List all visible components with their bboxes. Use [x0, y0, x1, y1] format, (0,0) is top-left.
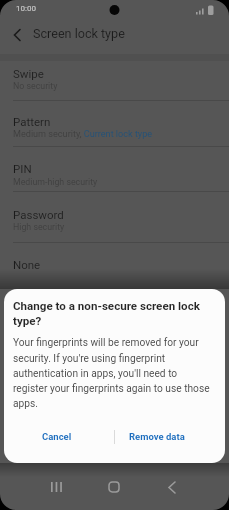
staticText: Medium-high security [13, 177, 98, 187]
button[interactable] [38, 472, 76, 502]
button[interactable]: Pattern [0, 100, 229, 146]
button[interactable] [152, 472, 190, 502]
button[interactable]: Swipe [0, 56, 229, 100]
button[interactable] [0, 22, 229, 48]
staticText: Change to a non-secure screen lock type? [13, 299, 200, 328]
staticText: Pattern [13, 115, 51, 128]
button[interactable]: None [0, 242, 229, 289]
button[interactable]: Password [0, 191, 229, 242]
staticText: Password [13, 208, 64, 221]
button[interactable]: Cancel [24, 421, 90, 451]
staticText: No security [13, 81, 58, 91]
staticText: High security [13, 222, 65, 232]
staticText: Remove data [129, 431, 185, 442]
staticText: 10:00 [16, 4, 36, 13]
button[interactable]: PIN [0, 146, 229, 191]
staticText: Screen lock type [33, 26, 125, 41]
staticText: Swipe [13, 67, 44, 80]
staticText: Your fingerprints will be removed for yo… [13, 337, 210, 409]
staticText: PIN [13, 162, 32, 175]
button[interactable]: Remove data [122, 421, 192, 451]
button[interactable] [95, 472, 133, 502]
staticText: None [13, 258, 41, 271]
staticText: Cancel [42, 431, 72, 442]
staticText: Medium security, Current lock type [13, 129, 153, 140]
